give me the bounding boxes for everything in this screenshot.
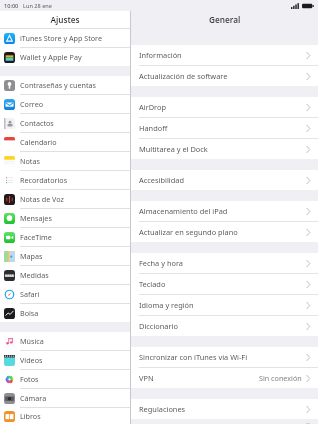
staticText: VPN	[139, 373, 154, 383]
staticText: Multitarea y el Dock	[139, 144, 208, 154]
staticText: Contactos	[20, 118, 54, 128]
staticText: Información	[139, 50, 182, 60]
button[interactable]: Mapas	[0, 247, 130, 266]
staticText: Safari	[20, 289, 40, 299]
button[interactable]: FaceTime	[0, 228, 130, 247]
button[interactable]: Regulaciones	[131, 399, 318, 419]
staticText: Recordatorios	[20, 175, 68, 185]
button[interactable]: Multitarea y el Dock	[131, 139, 318, 159]
button[interactable]: Contraseñas y cuentas	[0, 76, 130, 95]
button[interactable]: Teclado	[131, 274, 318, 295]
staticText: Handoff	[139, 123, 168, 133]
staticText: Libros	[20, 411, 41, 421]
staticText: Sin conexión	[259, 373, 302, 383]
button[interactable]: Cámara	[0, 389, 130, 408]
staticText: Notas de Voz	[20, 194, 64, 204]
staticText: Música	[20, 336, 44, 346]
staticText: Wallet y Apple Pay	[20, 52, 82, 62]
staticText: Teclado	[139, 279, 166, 289]
button[interactable]: Vídeos	[0, 351, 130, 370]
staticText: Vídeos	[20, 355, 43, 365]
staticText: Fotos	[20, 374, 39, 384]
button[interactable]: Música	[0, 332, 130, 351]
button[interactable]: Contactos	[0, 114, 130, 133]
button[interactable]: Fecha y hora	[131, 253, 318, 274]
staticText: Mapas	[20, 251, 43, 261]
staticText: Sincronizar con iTunes via Wi-Fi	[139, 352, 248, 362]
staticText: Diccionario	[139, 321, 178, 331]
staticText: AirDrop	[139, 102, 166, 112]
button[interactable]: Calendario	[0, 133, 130, 152]
button[interactable]: iTunes Store y App Store	[0, 29, 130, 48]
staticText: Regulaciones	[139, 404, 186, 414]
button[interactable]: Correo	[0, 95, 130, 114]
button[interactable]: Recordatorios	[0, 171, 130, 190]
staticText: Lun 28 ene	[23, 2, 52, 10]
staticText: Actualización de software	[139, 71, 228, 81]
button[interactable]: Mensajes	[0, 209, 130, 228]
button[interactable]: Accesibilidad	[131, 170, 318, 190]
button[interactable]: Información	[131, 45, 318, 66]
staticText: Bolsa	[20, 308, 39, 318]
staticText: Accesibilidad	[139, 175, 184, 185]
button[interactable]: Diccionario	[131, 316, 318, 336]
staticText: General	[209, 14, 241, 25]
staticText: Almacenamiento del iPad	[139, 206, 228, 216]
staticText: Actualizar en segundo plano	[139, 227, 238, 237]
button[interactable]: Idioma y región	[131, 295, 318, 316]
button[interactable]: Libros	[0, 408, 130, 424]
button[interactable]: Almacenamiento del iPad	[131, 201, 318, 222]
staticText: Medidas	[20, 270, 49, 280]
staticText: Contraseñas y cuentas	[20, 80, 97, 90]
staticText: Idioma y región	[139, 300, 194, 310]
button[interactable]: Wallet y Apple Pay	[0, 48, 130, 66]
button[interactable]: Fotos	[0, 370, 130, 389]
button[interactable]: Handoff	[131, 118, 318, 139]
button[interactable]: Bolsa	[0, 304, 130, 322]
staticText: Notas	[20, 156, 40, 166]
staticText: 10:00	[4, 2, 19, 10]
staticText: Fecha y hora	[139, 258, 183, 268]
button[interactable]: Actualización de software	[131, 66, 318, 86]
button[interactable]: Sincronizar con iTunes via Wi-Fi	[131, 347, 318, 368]
staticText: Cámara	[20, 393, 47, 403]
staticText: Calendario	[20, 137, 57, 147]
button[interactable]: AirDrop	[131, 97, 318, 118]
staticText: Correo	[20, 99, 44, 109]
button[interactable]: Actualizar en segundo plano	[131, 222, 318, 242]
button[interactable]: VPN	[131, 368, 318, 388]
staticText: Mensajes	[20, 213, 52, 223]
staticText: iTunes Store y App Store	[20, 33, 102, 43]
button[interactable]: Medidas	[0, 266, 130, 285]
button[interactable]: Safari	[0, 285, 130, 304]
button[interactable]: Notas de Voz	[0, 190, 130, 209]
staticText: FaceTime	[20, 232, 52, 242]
staticText: Ajustes	[50, 14, 80, 25]
button[interactable]: Notas	[0, 152, 130, 171]
